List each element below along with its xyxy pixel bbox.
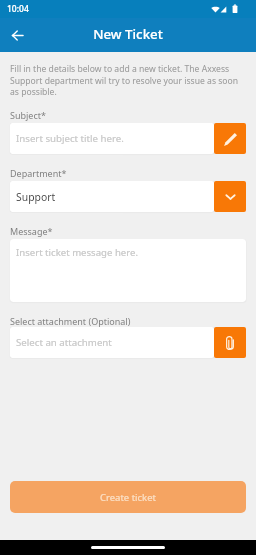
staticText: New Ticket <box>93 25 163 43</box>
staticText: Fill in the details below to add a new t… <box>10 63 244 97</box>
staticText: Create ticket <box>100 491 156 504</box>
button[interactable]: Support <box>10 181 214 212</box>
staticText: Message* <box>10 225 53 237</box>
button[interactable]: Edit subject <box>214 123 246 154</box>
button[interactable]: Create ticket <box>10 481 246 513</box>
button[interactable]: Back <box>3 21 31 49</box>
staticText: Insert ticket message here. <box>16 246 138 259</box>
staticText: Department* <box>10 167 67 179</box>
staticText: Insert subject title here. <box>16 132 124 145</box>
button[interactable]: Select an attachment <box>10 327 214 358</box>
staticText: Select attachment (Optional) <box>10 315 131 327</box>
button[interactable]: Attach file <box>214 327 246 358</box>
staticText: Subject* <box>10 109 46 121</box>
button[interactable]: Select department <box>214 181 246 212</box>
button[interactable]: Insert subject title here. <box>10 123 214 154</box>
staticText: Support <box>16 190 56 204</box>
staticText: Select an attachment <box>16 336 112 349</box>
staticText: 10:04 <box>7 3 29 15</box>
button[interactable]: Insert ticket message here. <box>10 239 246 302</box>
